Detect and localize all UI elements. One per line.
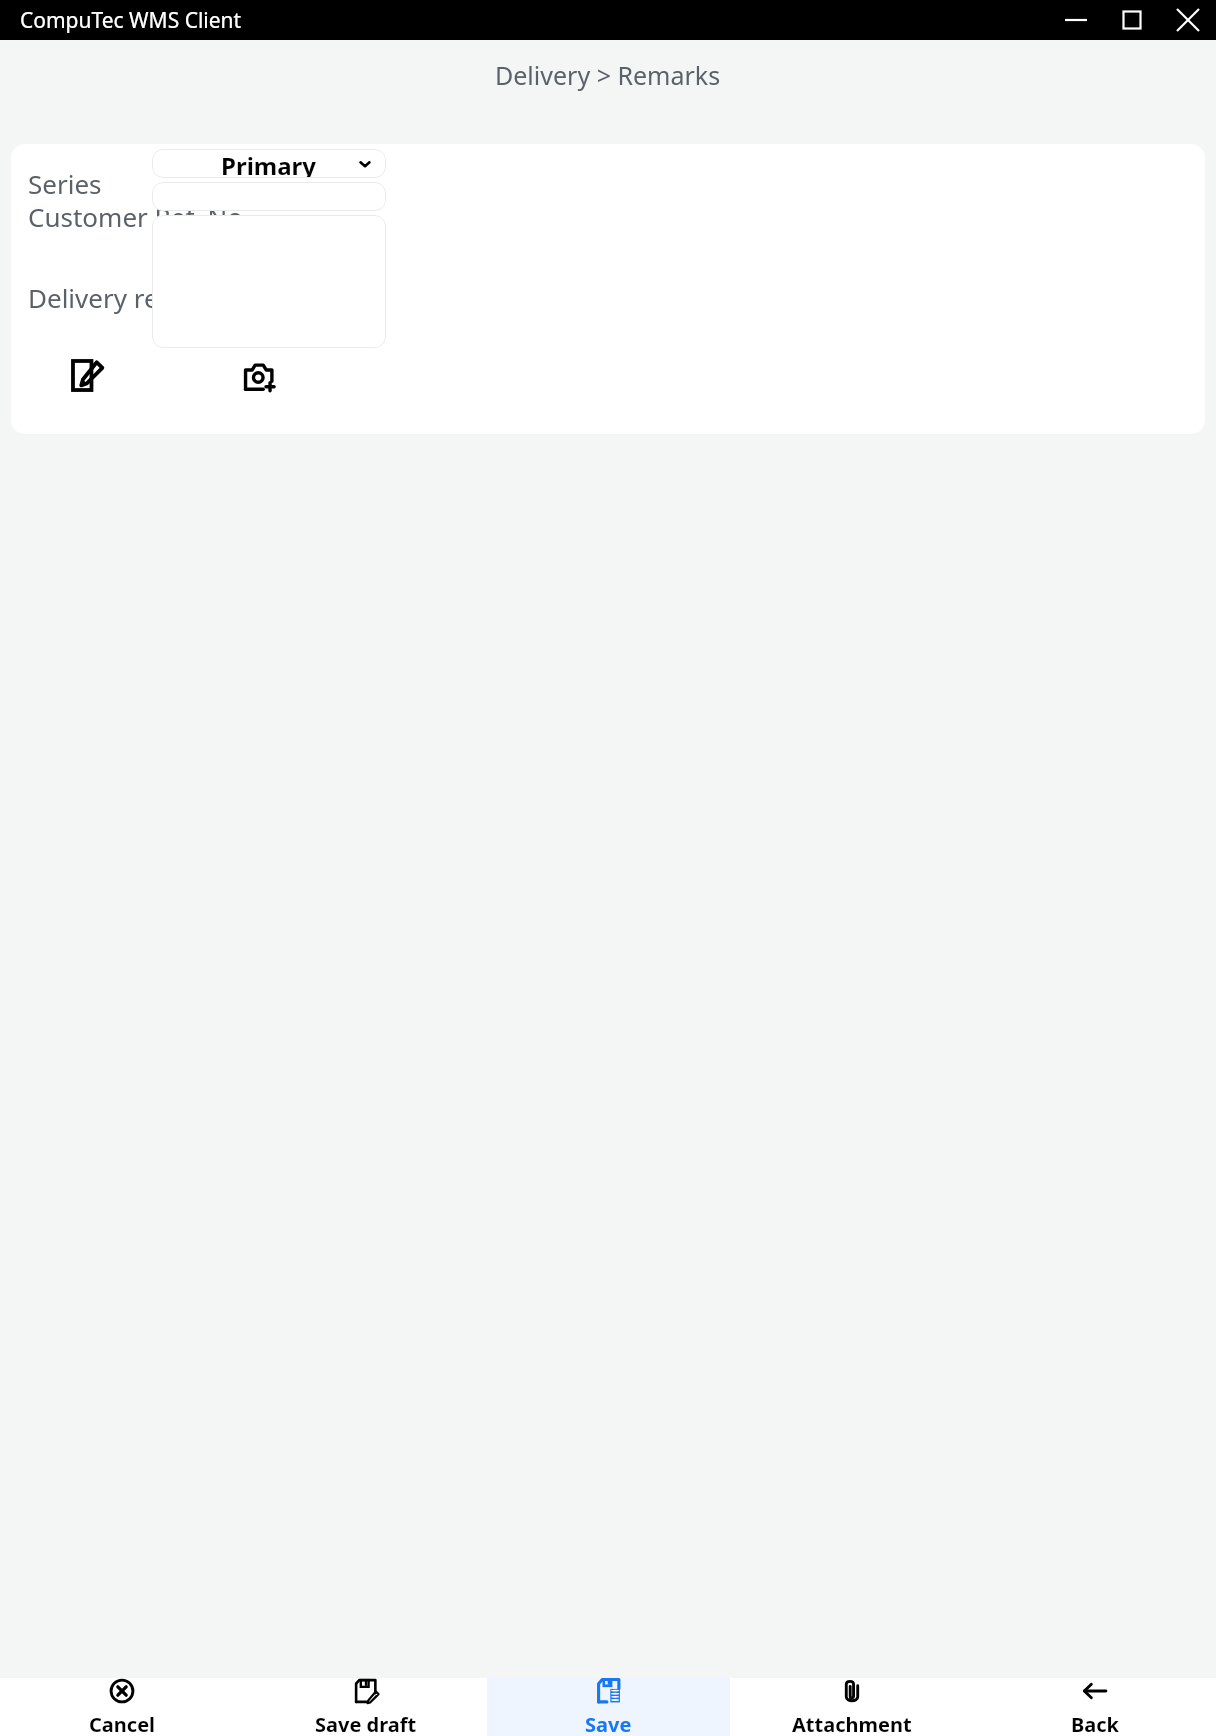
staticText: Attachment <box>792 1711 912 1736</box>
staticText: CompuTec WMS Client <box>20 6 242 35</box>
button[interactable]: Close <box>1160 0 1216 40</box>
staticText: Save <box>585 1711 632 1736</box>
staticText: Back <box>1071 1711 1119 1736</box>
button[interactable]: Primary <box>152 149 386 178</box>
staticText: Cancel <box>89 1711 156 1736</box>
staticText: Save draft <box>315 1711 417 1736</box>
button[interactable]: Sign <box>69 357 105 393</box>
staticText: Primary <box>221 149 317 178</box>
button[interactable]: Save <box>487 1678 730 1736</box>
button[interactable] <box>152 215 386 348</box>
button[interactable] <box>152 182 386 211</box>
staticText: Delivery remarks <box>28 280 235 315</box>
button[interactable]: Minimize <box>1048 0 1104 40</box>
button[interactable]: Attachment <box>730 1678 973 1736</box>
button[interactable]: Save draft <box>244 1678 487 1736</box>
button[interactable]: Cancel <box>0 1678 244 1736</box>
button[interactable]: Maximize <box>1104 0 1160 40</box>
button[interactable]: Back <box>973 1678 1216 1736</box>
staticText: Series <box>28 166 102 201</box>
staticText: Customer Ref. No <box>28 199 244 234</box>
staticText: Delivery > Remarks <box>495 58 721 92</box>
button[interactable]: Add photo <box>241 359 277 395</box>
